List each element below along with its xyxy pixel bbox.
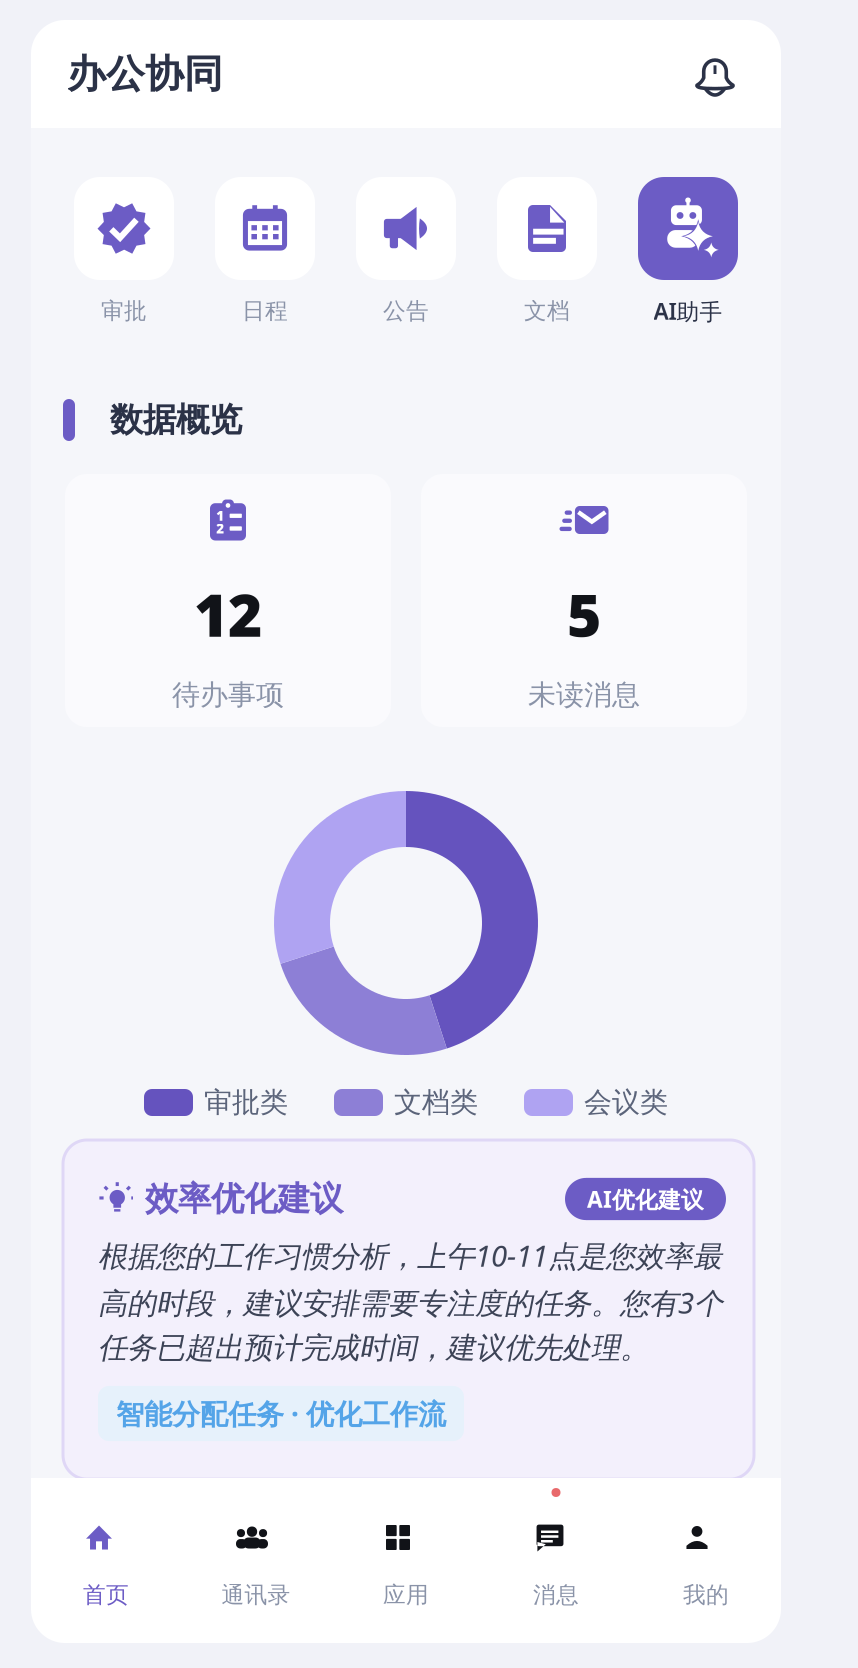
button[interactable]: AI助手	[617, 177, 758, 325]
staticText: 智能分配任务 · 优化工作流	[116, 1395, 446, 1432]
staticText: 文档类	[394, 1085, 478, 1120]
staticText: 办公协同	[67, 50, 223, 98]
staticText: 审批	[101, 297, 147, 325]
staticText: 根据您的工作习惯分析，上午10-11点是您效率最高的时段，建议安排需要专注度的任…	[98, 1236, 723, 1366]
button[interactable]: 我的	[631, 1478, 781, 1643]
staticText: 文档	[524, 297, 570, 325]
staticText: 首页	[83, 1581, 129, 1609]
staticText: 数据概览	[110, 399, 242, 440]
button[interactable]: 日程	[194, 177, 335, 325]
staticText: AI助手	[653, 296, 722, 326]
staticText: 应用	[383, 1581, 429, 1609]
staticText: 通讯录	[221, 1581, 290, 1609]
button[interactable]: 首页	[31, 1478, 181, 1643]
button[interactable]: 审批	[53, 177, 194, 325]
staticText: 未读消息	[528, 678, 640, 712]
staticText: 审批类	[204, 1085, 288, 1120]
staticText: 1	[216, 507, 224, 524]
button[interactable]: 公告	[335, 177, 476, 325]
staticText: 日程	[242, 297, 288, 325]
staticText: 效率优化建议	[145, 1178, 343, 1219]
button[interactable]: 通讯录	[181, 1478, 331, 1643]
staticText: 我的	[683, 1581, 729, 1609]
staticText: 公告	[383, 297, 429, 325]
staticText: 12	[194, 575, 262, 653]
staticText: 2	[216, 520, 224, 537]
button[interactable]: 文档	[476, 177, 617, 325]
staticText: 会议类	[584, 1085, 668, 1120]
staticText: 5	[567, 575, 601, 653]
staticText: 待办事项	[172, 678, 284, 712]
button[interactable]: 通知	[688, 47, 742, 101]
button[interactable]: 消息	[481, 1478, 631, 1643]
staticText: 消息	[533, 1581, 579, 1609]
button[interactable]: 应用	[331, 1478, 481, 1643]
staticText: AI优化建议	[587, 1184, 704, 1214]
